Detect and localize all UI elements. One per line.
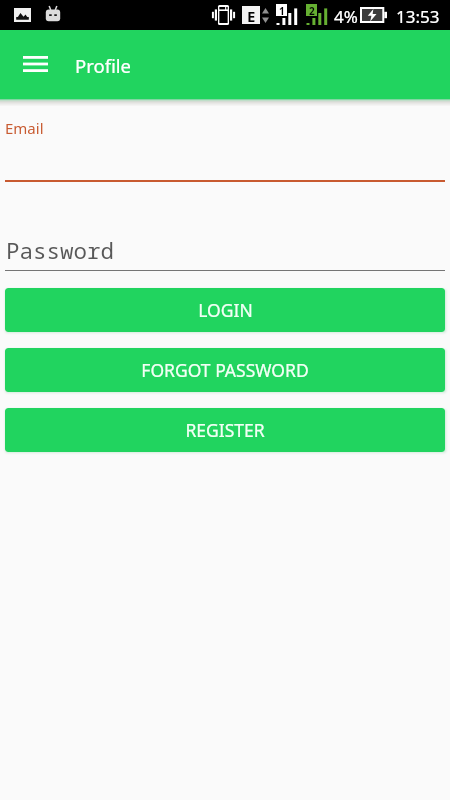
staticText: FORGOT PASSWORD bbox=[141, 358, 309, 382]
staticText: Email bbox=[5, 118, 44, 138]
staticText: Password bbox=[6, 235, 115, 266]
staticText: LOGIN bbox=[198, 298, 253, 322]
staticText: 13:53 bbox=[396, 5, 440, 28]
button[interactable]: FORGOT PASSWORD bbox=[5, 348, 445, 392]
button[interactable]: Email bbox=[5, 113, 445, 182]
button[interactable]: Password bbox=[5, 232, 445, 271]
staticText: 1 bbox=[279, 4, 285, 16]
staticText: 2 bbox=[309, 4, 315, 16]
staticText: REGISTER bbox=[185, 418, 265, 442]
button[interactable]: Open navigation menu bbox=[10, 37, 60, 91]
staticText: 4% bbox=[334, 5, 358, 28]
staticText: Profile bbox=[75, 53, 131, 78]
staticText: E bbox=[247, 6, 256, 24]
button[interactable]: LOGIN bbox=[5, 288, 445, 332]
button[interactable]: REGISTER bbox=[5, 408, 445, 452]
